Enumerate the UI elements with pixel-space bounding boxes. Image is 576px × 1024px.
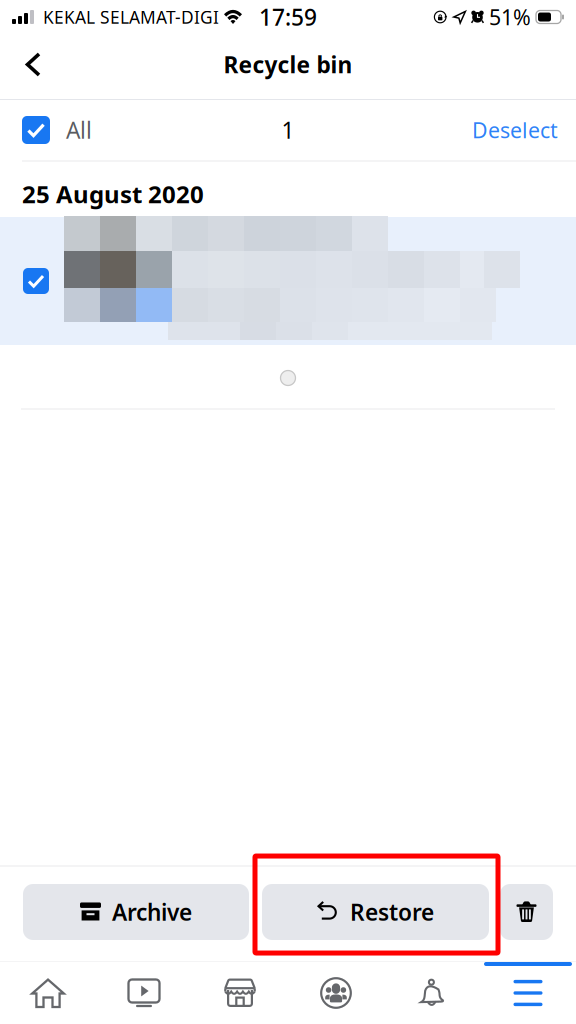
- button[interactable]: All: [0, 104, 106, 156]
- staticText: Restore: [350, 897, 434, 927]
- staticText: 1: [281, 115, 294, 145]
- button[interactable]: Archive: [23, 884, 249, 940]
- button[interactable]: Restore: [262, 884, 489, 940]
- button[interactable]: Groups: [288, 962, 384, 1024]
- staticText: 51%: [489, 3, 531, 31]
- button[interactable]: Notifications: [384, 962, 480, 1024]
- button[interactable]: Back: [0, 38, 60, 91]
- staticText: All: [66, 115, 92, 145]
- staticText: Recycle bin: [223, 49, 352, 79]
- button[interactable]: Deselect: [458, 105, 576, 155]
- staticText: 17:59: [259, 2, 317, 32]
- button[interactable]: [0, 217, 576, 345]
- button[interactable]: Delete: [500, 884, 553, 940]
- staticText: 25 August 2020: [22, 178, 204, 210]
- button[interactable]: Menu: [480, 962, 576, 1024]
- button[interactable]: Marketplace: [192, 962, 288, 1024]
- staticText: Deselect: [472, 116, 558, 144]
- button[interactable]: Watch: [96, 962, 192, 1024]
- staticText: Archive: [112, 897, 192, 927]
- button[interactable]: Home: [0, 962, 96, 1024]
- staticText: KEKAL SELAMAT-DIGI: [43, 5, 219, 28]
